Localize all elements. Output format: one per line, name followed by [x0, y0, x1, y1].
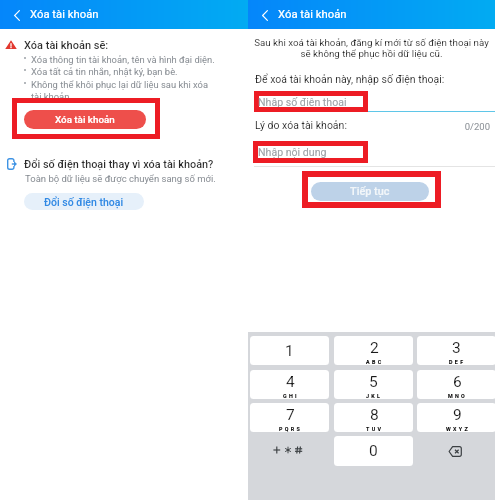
- staticText: JKL: [366, 393, 383, 399]
- button[interactable]: 0: [334, 436, 413, 466]
- staticText: Xóa tất cả tin nhắn, nhật ký, bạn bè.: [31, 66, 215, 77]
- staticText: DEF: [449, 359, 466, 365]
- staticText: 8: [370, 406, 379, 424]
- staticText: ABC: [366, 359, 384, 365]
- staticText: 2: [370, 339, 379, 357]
- staticText: WXYZ: [446, 426, 470, 432]
- staticText: 7: [286, 406, 295, 424]
- button[interactable]: Đổi số điện thoại: [24, 193, 144, 210]
- button[interactable]: Back: [0, 0, 34, 29]
- button[interactable]: 3: [417, 336, 495, 365]
- staticText: 5: [369, 373, 378, 391]
- staticText: Xóa tài khoản: [278, 8, 347, 21]
- staticText: Lý do xóa tài khoản:: [255, 119, 347, 131]
- staticText: Nhập số điện thoại: [258, 96, 347, 107]
- staticText: Xóa tài khoản: [55, 114, 115, 125]
- staticText: DEF: [449, 359, 466, 365]
- button[interactable]: Symbols: [250, 436, 329, 466]
- staticText: Toàn bộ dữ liệu sẽ được chuyển sang số m…: [25, 173, 216, 184]
- button[interactable]: 6: [417, 370, 495, 399]
- staticText: MNO: [448, 393, 468, 399]
- staticText: Không thể khôi phục lại dữ liệu sau khi …: [31, 79, 215, 102]
- staticText: 0/200: [248, 121, 490, 132]
- button[interactable]: Nhập nội dung: [258, 146, 363, 158]
- button[interactable]: Tiếp tục: [311, 182, 429, 201]
- button[interactable]: 8: [334, 403, 413, 432]
- staticText: JKL: [366, 393, 383, 399]
- staticText: 3: [452, 339, 461, 357]
- staticText: ABC: [366, 359, 384, 365]
- staticText: Nhập nội dung: [258, 146, 327, 158]
- button[interactable]: 7: [250, 403, 329, 432]
- staticText: MNO: [448, 393, 468, 399]
- staticText: TUV: [366, 426, 384, 432]
- staticText: Tiếp tục: [350, 185, 390, 198]
- button[interactable]: Backspace: [417, 436, 495, 466]
- button[interactable]: Nhập số điện thoại: [259, 96, 363, 107]
- button[interactable]: 5: [334, 370, 413, 399]
- button[interactable]: 4: [250, 370, 329, 399]
- button[interactable]: 1: [250, 336, 329, 365]
- staticText: TUV: [366, 426, 384, 432]
- staticText: 6: [453, 373, 462, 391]
- staticText: Xóa thông tin tài khoản, tên và hình đại…: [31, 54, 215, 65]
- staticText: Xóa tài khoản sẽ:: [24, 39, 109, 52]
- staticText: 4: [286, 373, 295, 391]
- button[interactable]: 2: [334, 336, 413, 365]
- button[interactable]: 9: [417, 403, 495, 432]
- staticText: 0: [369, 442, 378, 460]
- staticText: Đổi số điện thoại thay vì xóa tài khoản?: [24, 158, 214, 171]
- staticText: Sau khi xoá tài khoản, đăng kí mới từ số…: [251, 37, 492, 59]
- staticText: Xóa tài khoản: [30, 8, 99, 21]
- staticText: Đổi số điện thoại: [44, 196, 124, 208]
- staticText: PQRS: [279, 426, 303, 432]
- staticText: WXYZ: [446, 426, 470, 432]
- staticText: 9: [453, 406, 462, 424]
- staticText: PQRS: [279, 426, 303, 432]
- button[interactable]: Xóa tài khoản: [24, 110, 146, 129]
- staticText: GHI: [283, 393, 299, 399]
- staticText: Để xoá tài khoản này, nhập số điện thoại…: [255, 73, 445, 85]
- button[interactable]: Back: [248, 0, 282, 29]
- staticText: 1: [285, 342, 294, 360]
- staticText: GHI: [283, 393, 299, 399]
